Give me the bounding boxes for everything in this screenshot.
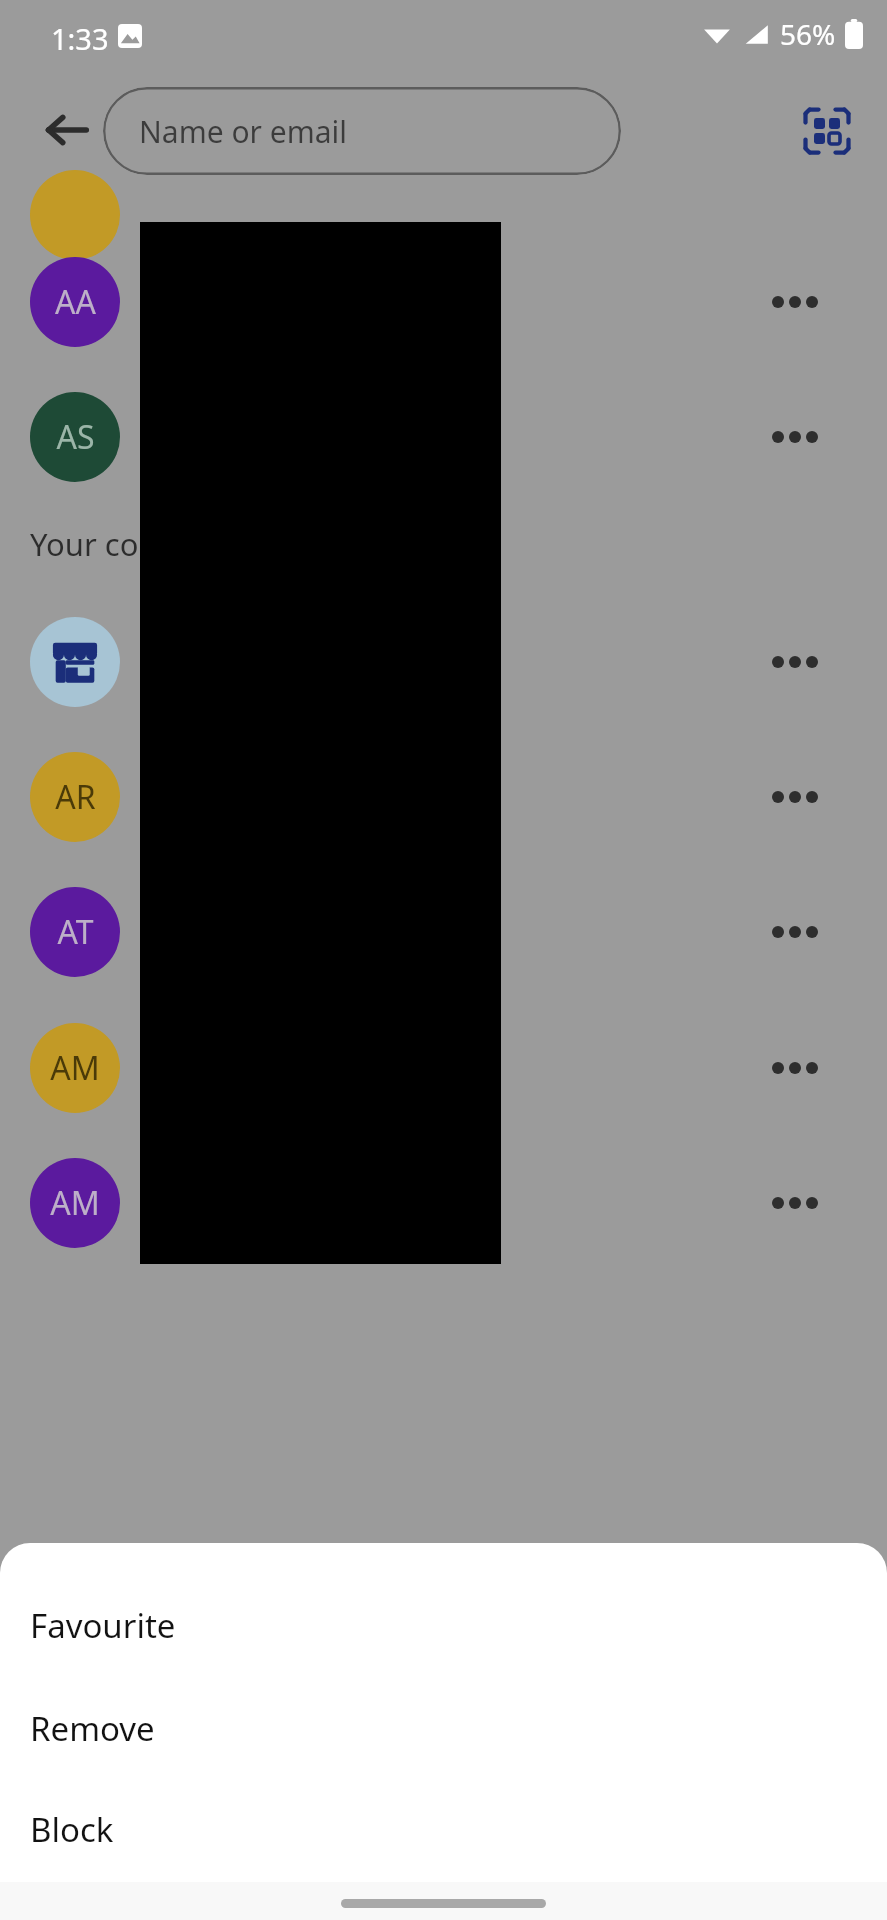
button[interactable]: More options (757, 759, 833, 835)
staticText: AM (50, 1181, 100, 1225)
staticText: AM (50, 1046, 100, 1090)
staticText: Favourite (30, 1603, 176, 1648)
staticText: 1:33 (51, 19, 109, 58)
button[interactable]: Name or email (103, 87, 621, 175)
button[interactable]: Remove (0, 1692, 887, 1764)
staticText: Name or email (139, 111, 348, 152)
button[interactable]: AM (0, 1023, 887, 1113)
button[interactable]: More options (0, 617, 887, 707)
button[interactable]: More options (757, 1030, 833, 1106)
button[interactable]: More options (757, 1165, 833, 1241)
button[interactable]: AM (0, 1158, 887, 1248)
button[interactable]: Scan QR code (786, 90, 868, 172)
button[interactable]: AA (0, 257, 887, 347)
button[interactable]: Favourite (0, 1589, 887, 1661)
button[interactable]: More options (757, 624, 833, 700)
staticText: 56% (780, 15, 836, 53)
staticText: AS (56, 415, 95, 459)
button[interactable]: AT (0, 887, 887, 977)
button[interactable]: AS (0, 392, 887, 482)
button[interactable]: More options (757, 894, 833, 970)
button[interactable]: Back (27, 90, 107, 170)
staticText: AA (55, 280, 96, 324)
button[interactable]: More options (757, 399, 833, 475)
staticText: Remove (30, 1706, 155, 1751)
button[interactable]: Block (0, 1793, 887, 1865)
staticText: AR (55, 775, 96, 819)
staticText: AT (57, 910, 94, 954)
staticText: Block (30, 1807, 114, 1852)
button[interactable]: AR (0, 752, 887, 842)
staticText: Your contacts (30, 523, 228, 565)
button[interactable]: More options (757, 264, 833, 340)
